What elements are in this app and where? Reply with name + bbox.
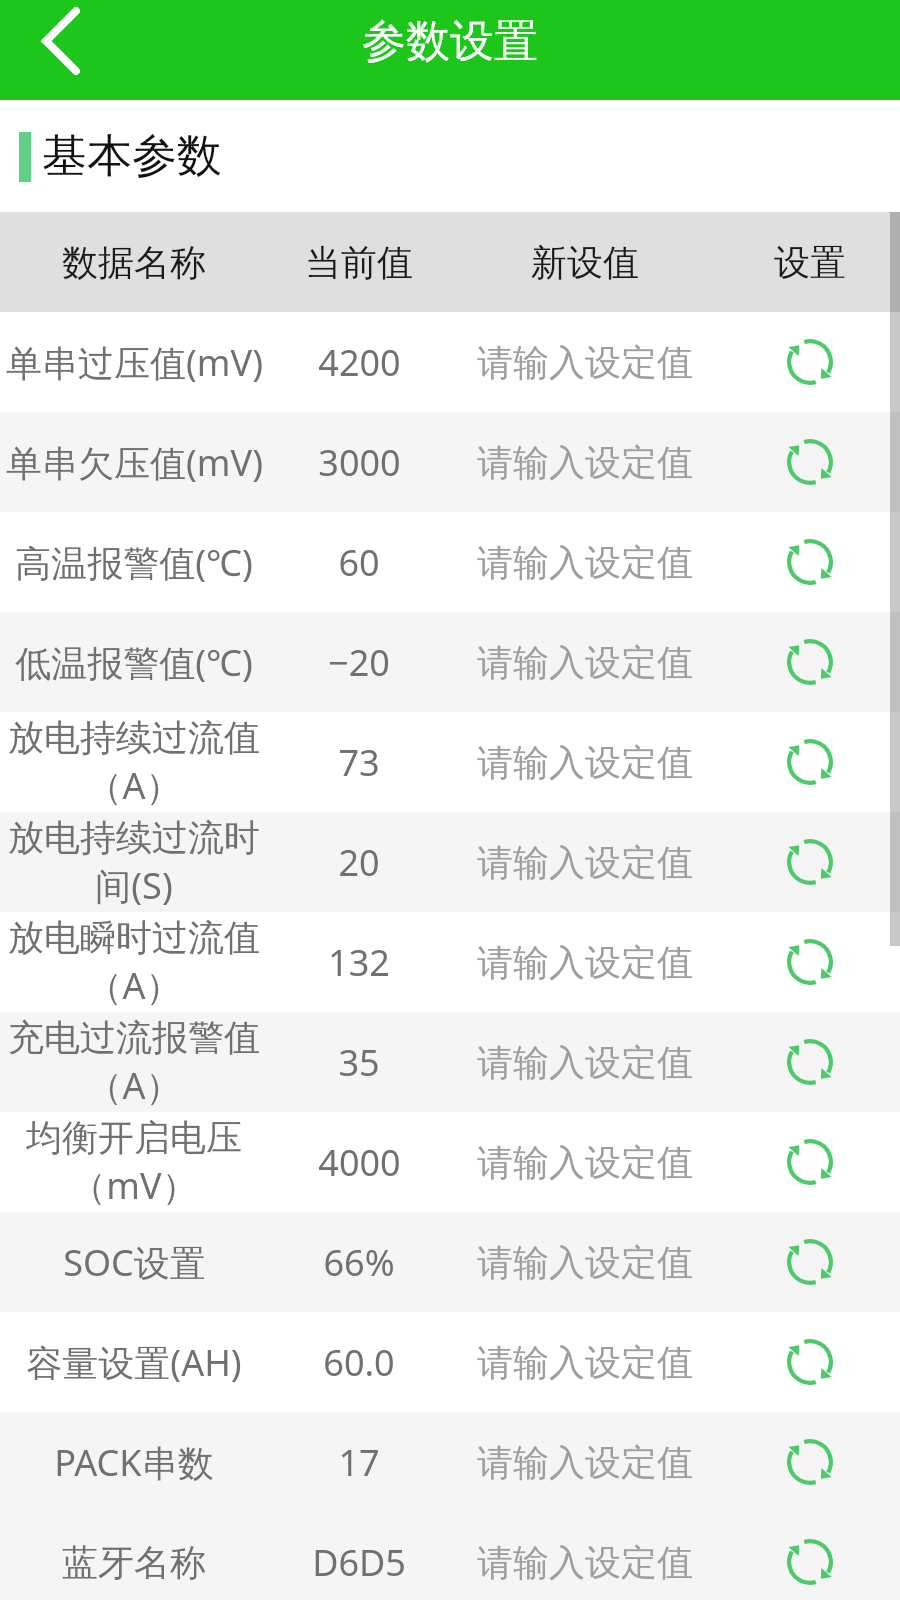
staticText: 请输入设定值 xyxy=(477,1240,693,1285)
staticText: 当前值 xyxy=(305,240,413,285)
staticText: 请输入设定值 xyxy=(477,340,693,385)
staticText: 均衡开启电压（mV） xyxy=(0,1115,268,1210)
staticText: 放电持续过流值（A） xyxy=(0,715,268,810)
staticText: 单串欠压值(mV) xyxy=(6,438,263,487)
staticText: 请输入设定值 xyxy=(477,840,693,885)
button[interactable]: PACK串数 xyxy=(0,1412,900,1512)
staticText: PACK串数 xyxy=(54,1438,214,1487)
staticText: 设置 xyxy=(774,240,846,285)
staticText: 充电过流报警值（A） xyxy=(0,1015,268,1110)
staticText: 请输入设定值 xyxy=(477,640,693,685)
button[interactable]: 充电过流报警值（A） xyxy=(0,1012,900,1112)
button[interactable]: Set value xyxy=(720,1412,900,1512)
staticText: 低温报警值(℃) xyxy=(15,638,253,687)
button[interactable]: Set value xyxy=(720,812,900,912)
staticText: 容量设置(AH) xyxy=(26,1338,242,1387)
button[interactable]: Set value xyxy=(720,1112,900,1212)
staticText: 20 xyxy=(338,838,380,887)
button[interactable]: 蓝牙名称 xyxy=(0,1512,900,1600)
button[interactable]: Back xyxy=(0,0,118,84)
button[interactable]: 容量设置(AH) xyxy=(0,1312,900,1412)
staticText: SOC设置 xyxy=(63,1238,206,1287)
staticText: 35 xyxy=(338,1038,380,1087)
staticText: 3000 xyxy=(318,438,401,487)
button[interactable]: 放电瞬时过流值（A） xyxy=(0,912,900,1012)
staticText: 66% xyxy=(323,1238,395,1287)
staticText: 高温报警值(℃) xyxy=(15,538,253,587)
button[interactable]: 低温报警值(℃) xyxy=(0,612,900,712)
staticText: 17 xyxy=(338,1438,380,1487)
button[interactable]: 放电持续过流值（A） xyxy=(0,712,900,812)
staticText: 请输入设定值 xyxy=(477,740,693,785)
staticText: D6D5 xyxy=(312,1538,406,1587)
button[interactable]: Set value xyxy=(720,1312,900,1412)
staticText: 请输入设定值 xyxy=(477,940,693,985)
staticText: 请输入设定值 xyxy=(477,1540,693,1585)
button[interactable]: SOC设置 xyxy=(0,1212,900,1312)
button[interactable]: Set value xyxy=(720,612,900,712)
button[interactable]: 高温报警值(℃) xyxy=(0,512,900,612)
staticText: 请输入设定值 xyxy=(477,1140,693,1185)
button[interactable]: Set value xyxy=(720,712,900,812)
staticText: −20 xyxy=(328,638,390,687)
button[interactable]: Set value xyxy=(720,1012,900,1112)
staticText: 数据名称 xyxy=(62,240,206,285)
staticText: 参数设置 xyxy=(362,14,538,69)
button[interactable]: Set value xyxy=(720,512,900,612)
staticText: 请输入设定值 xyxy=(477,540,693,585)
staticText: 放电瞬时过流值（A） xyxy=(0,915,268,1010)
staticText: 单串过压值(mV) xyxy=(6,338,263,387)
button[interactable]: 单串欠压值(mV) xyxy=(0,412,900,512)
button[interactable]: Set value xyxy=(720,912,900,1012)
staticText: 132 xyxy=(328,938,390,987)
staticText: 73 xyxy=(338,738,380,787)
button[interactable]: Set value xyxy=(720,1212,900,1312)
staticText: 60.0 xyxy=(323,1338,395,1387)
staticText: 请输入设定值 xyxy=(477,1440,693,1485)
button[interactable]: 单串过压值(mV) xyxy=(0,312,900,412)
staticText: 4200 xyxy=(318,338,401,387)
button[interactable]: Set value xyxy=(720,312,900,412)
button[interactable]: 均衡开启电压（mV） xyxy=(0,1112,900,1212)
staticText: 请输入设定值 xyxy=(477,1340,693,1385)
staticText: 新设值 xyxy=(531,240,639,285)
staticText: 请输入设定值 xyxy=(477,1040,693,1085)
staticText: 60 xyxy=(338,538,380,587)
button[interactable]: 放电持续过流时间(S) xyxy=(0,812,900,912)
staticText: 4000 xyxy=(318,1138,401,1187)
staticText: 请输入设定值 xyxy=(477,440,693,485)
staticText: 放电持续过流时间(S) xyxy=(0,815,268,910)
staticText: 蓝牙名称 xyxy=(62,1540,206,1585)
button[interactable]: Set value xyxy=(720,1512,900,1600)
button[interactable]: Set value xyxy=(720,412,900,512)
staticText: 基本参数 xyxy=(42,128,222,185)
